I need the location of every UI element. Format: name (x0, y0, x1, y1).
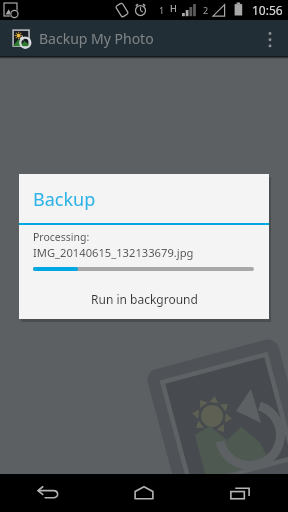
staticText: Processing: (33, 230, 90, 244)
button[interactable]: Run in background (19, 279, 269, 319)
staticText: 1 (159, 4, 165, 16)
staticText: H (170, 2, 177, 14)
staticText: 2 (203, 4, 209, 16)
button[interactable]: Home (96, 474, 192, 512)
button[interactable]: More options (257, 20, 283, 56)
staticText: Backup (33, 187, 96, 212)
staticText: 10:56 (252, 2, 283, 18)
button[interactable]: Recent apps (192, 474, 288, 512)
staticText: Backup My Photo (39, 29, 154, 48)
button[interactable]: Back (0, 474, 96, 512)
staticText: IMG_20140615_132133679.jpg (33, 245, 194, 260)
staticText: Run in background (91, 291, 198, 307)
